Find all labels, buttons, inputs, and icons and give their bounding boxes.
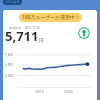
staticText: 2021/11/05 (25, 26, 40, 30)
staticText: 10/28 (64, 90, 73, 94)
staticText: 運用実績 (9, 26, 21, 30)
staticText: はじめる (6, 0, 20, 4)
staticText: 10/14 (35, 90, 44, 94)
button[interactable]: チャージ (78, 27, 90, 39)
staticText: 5,711 (5, 27, 39, 45)
staticText: 180万ユーザーが運用中！ (22, 14, 80, 21)
button[interactable]: タブ (3, 0, 22, 5)
button[interactable]: 180万ユーザーが運用中！ (19, 13, 82, 22)
staticText: 7,000 (5, 53, 14, 57)
staticText: 5,000 (5, 63, 14, 67)
staticText: 円 (39, 38, 44, 44)
staticText: 3,000 (5, 74, 14, 78)
